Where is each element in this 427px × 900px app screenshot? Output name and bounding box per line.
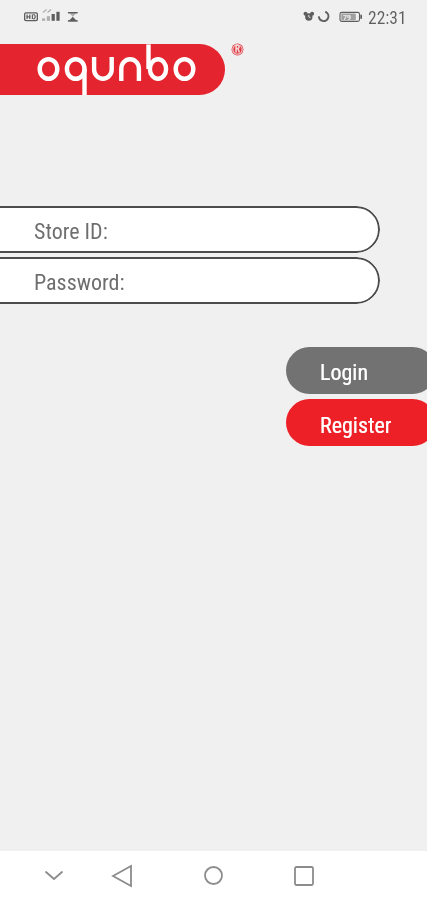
button[interactable]: Home [191, 853, 236, 898]
button[interactable]: Recents [281, 853, 326, 898]
button[interactable]: Back [99, 853, 144, 898]
staticText: Login [320, 360, 369, 386]
staticText: 22:31 [368, 8, 407, 29]
staticText: 79 [343, 13, 351, 22]
staticText: Store ID: [34, 219, 108, 245]
staticText: Password: [34, 270, 125, 296]
button[interactable]: Store ID: [0, 206, 380, 253]
button[interactable]: Login [286, 347, 427, 394]
staticText: Register [320, 413, 392, 439]
staticText: R [235, 44, 240, 55]
button[interactable]: Password: [0, 257, 380, 304]
button[interactable]: Hide keyboard [31, 853, 76, 898]
button[interactable]: Register [286, 399, 427, 446]
